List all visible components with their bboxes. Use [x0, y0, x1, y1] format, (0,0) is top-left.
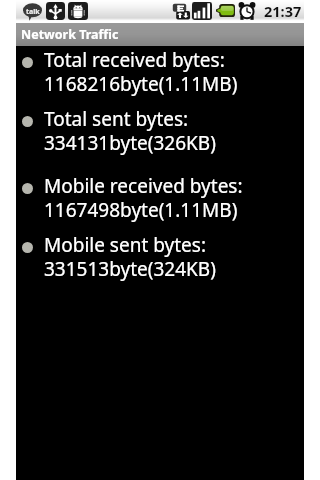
staticText: Total sent bytes: 334131byte(326KB) [44, 106, 216, 155]
button[interactable]: Mobile sent bytes: 331513byte(324KB) [16, 232, 304, 281]
staticText: 21:37 [264, 1, 302, 21]
staticText: Total received bytes: 1168216byte(1.11MB… [44, 47, 238, 96]
button[interactable]: Total sent bytes: 334131byte(326KB) [16, 106, 304, 155]
staticText: Mobile received bytes: 1167498byte(1.11M… [44, 173, 243, 222]
staticText: Mobile sent bytes: 331513byte(324KB) [44, 232, 216, 281]
button[interactable]: Network Traffic [16, 23, 304, 46]
staticText: talk [26, 7, 40, 17]
button[interactable]: Mobile received bytes: 1167498byte(1.11M… [16, 173, 304, 222]
staticText: Network Traffic [21, 26, 119, 43]
button[interactable]: Total received bytes: 1168216byte(1.11MB… [16, 47, 304, 96]
